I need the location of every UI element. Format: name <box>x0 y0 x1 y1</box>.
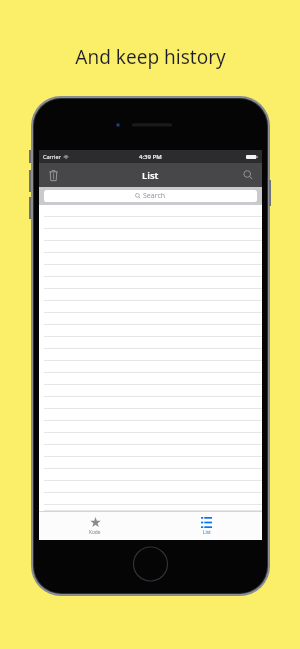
staticText: List <box>142 169 159 182</box>
staticText: And keep history <box>75 44 226 70</box>
button[interactable]: List <box>150 512 262 540</box>
staticText: Kode <box>89 529 101 536</box>
button[interactable] <box>39 289 262 301</box>
button[interactable] <box>39 505 262 511</box>
button[interactable] <box>39 325 262 337</box>
button[interactable] <box>39 493 262 505</box>
button[interactable] <box>39 277 262 289</box>
button[interactable] <box>39 469 262 481</box>
button[interactable] <box>39 265 262 277</box>
button[interactable] <box>39 409 262 421</box>
staticText: Search <box>143 191 166 201</box>
button[interactable] <box>39 373 262 385</box>
staticText: Carrier <box>43 153 61 160</box>
button[interactable] <box>39 433 262 445</box>
button[interactable] <box>39 349 262 361</box>
button[interactable] <box>39 397 262 409</box>
button[interactable] <box>39 337 262 349</box>
button[interactable] <box>39 481 262 493</box>
button[interactable] <box>39 457 262 469</box>
button[interactable] <box>39 445 262 457</box>
button[interactable] <box>39 361 262 373</box>
button[interactable] <box>39 229 262 241</box>
button[interactable] <box>39 385 262 397</box>
button[interactable]: Search <box>44 190 257 202</box>
button[interactable] <box>39 253 262 265</box>
button[interactable] <box>39 421 262 433</box>
button[interactable]: Search <box>239 166 257 184</box>
button[interactable] <box>39 205 262 217</box>
button[interactable] <box>39 301 262 313</box>
button[interactable] <box>39 313 262 325</box>
staticText: 4:39 PM <box>139 153 162 161</box>
button[interactable]: Delete <box>44 166 62 184</box>
staticText: List <box>203 529 211 536</box>
button[interactable]: Kode <box>39 512 150 540</box>
button[interactable] <box>39 217 262 229</box>
button[interactable] <box>39 241 262 253</box>
